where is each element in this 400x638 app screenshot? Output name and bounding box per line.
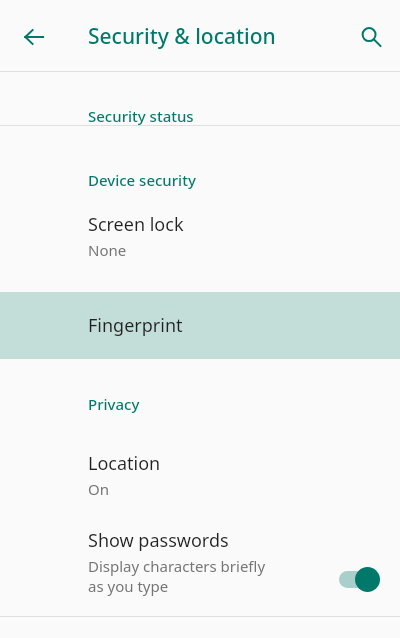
staticText: as you type	[88, 576, 169, 596]
button[interactable]: Location	[0, 440, 400, 522]
button[interactable]: Back	[16, 19, 52, 55]
staticText: Screen lock	[88, 212, 184, 237]
button[interactable]: Screen lock	[0, 192, 400, 292]
button[interactable]: Search	[353, 19, 389, 55]
staticText: Fingerprint	[88, 313, 183, 338]
staticText: None	[88, 240, 127, 260]
staticText: Show passwords	[88, 528, 229, 553]
staticText: Display characters briefly	[88, 556, 266, 576]
button[interactable]: Show passwords	[0, 522, 400, 616]
staticText: Privacy	[88, 394, 140, 414]
staticText: Security status	[88, 106, 194, 126]
staticText: Security & location	[88, 22, 276, 51]
button[interactable]: Show passwords toggle	[334, 564, 390, 594]
button[interactable]: Fingerprint	[0, 292, 400, 359]
staticText: On	[88, 479, 109, 499]
staticText: Device security	[88, 170, 196, 190]
staticText: Location	[88, 451, 161, 476]
